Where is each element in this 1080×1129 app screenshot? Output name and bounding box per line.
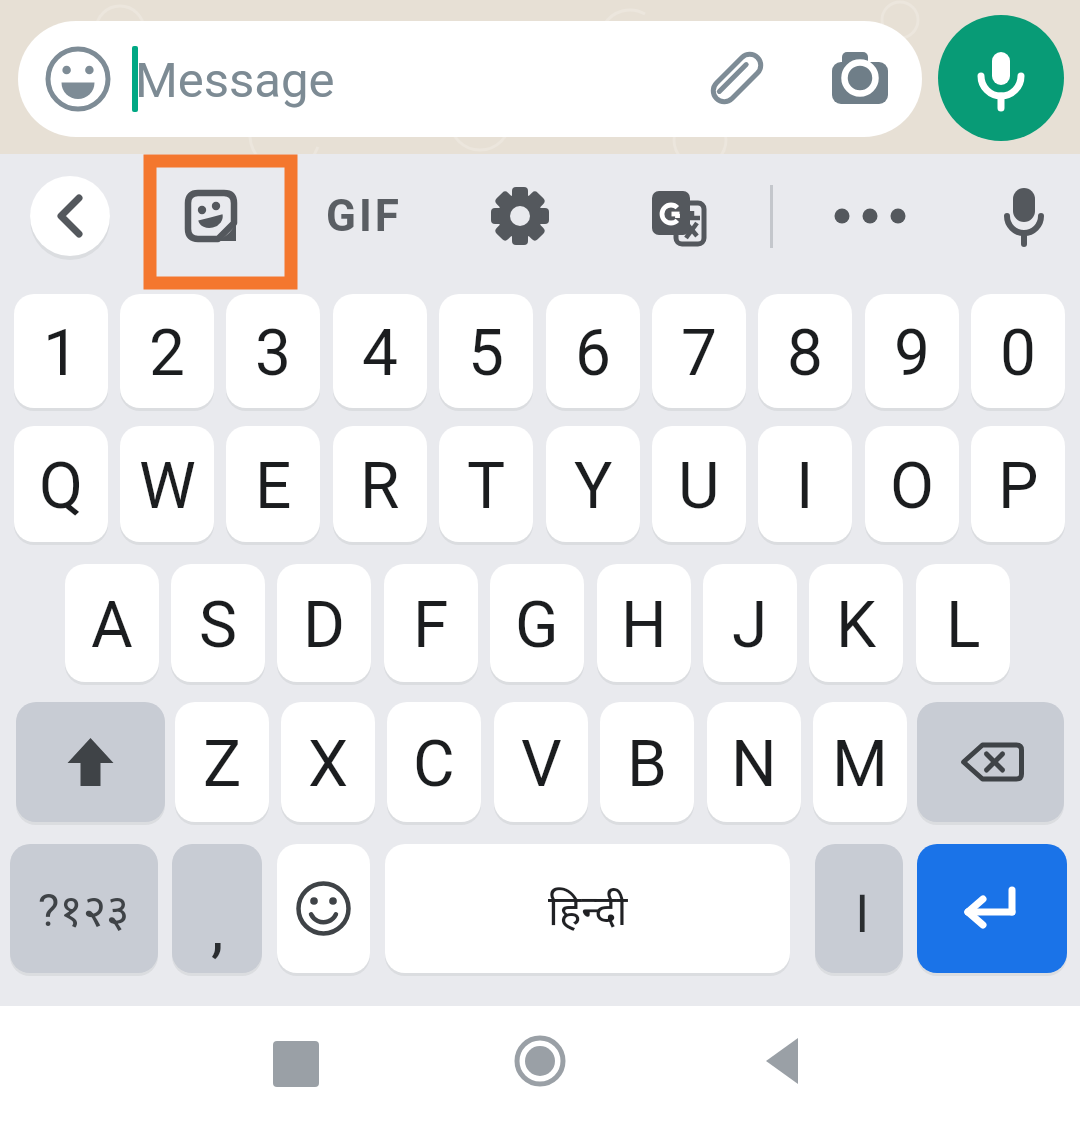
button[interactable]: H [597, 564, 691, 682]
button[interactable] [150, 161, 291, 283]
staticText: H [621, 588, 667, 663]
staticText: Q [39, 449, 84, 524]
staticText: B [627, 727, 667, 802]
button[interactable]: हिन्दी [385, 844, 790, 973]
staticText: 7 [681, 316, 717, 391]
button[interactable]: 6 [546, 294, 640, 408]
button[interactable]: F [384, 564, 478, 682]
button[interactable]: 9 [865, 294, 959, 408]
staticText: 5 [468, 316, 504, 391]
button[interactable]: U [652, 426, 746, 542]
button[interactable]: E [226, 426, 320, 542]
staticText: 0 [1000, 316, 1036, 391]
button[interactable] [917, 702, 1064, 822]
button[interactable] [277, 844, 370, 973]
staticText: हिन्दी [548, 880, 628, 937]
button[interactable]: Message [18, 21, 922, 137]
staticText: F [413, 588, 449, 663]
staticText: Y [574, 449, 613, 524]
button[interactable] [994, 184, 1054, 248]
staticText: K [836, 588, 877, 663]
staticText: M [832, 727, 888, 802]
button[interactable]: , [172, 844, 262, 973]
button[interactable]: S [171, 564, 265, 682]
button[interactable] [30, 176, 110, 256]
staticText: , [211, 891, 224, 966]
button[interactable]: 8 [758, 294, 852, 408]
button[interactable]: D [277, 564, 371, 682]
staticText: 3 [255, 316, 291, 391]
button[interactable]: 3 [226, 294, 320, 408]
button[interactable]: L [916, 564, 1010, 682]
button[interactable] [938, 15, 1064, 141]
staticText: I [796, 449, 814, 524]
button[interactable] [834, 200, 906, 232]
button[interactable]: P [971, 426, 1065, 542]
staticText: G [515, 588, 559, 663]
button[interactable]: W [120, 426, 214, 542]
staticText: N [731, 727, 777, 802]
staticText: L [946, 588, 981, 663]
button[interactable]: Y [546, 426, 640, 542]
staticText: X [308, 727, 349, 802]
button[interactable]: O [865, 426, 959, 542]
button[interactable]: C [387, 702, 481, 822]
staticText: । [848, 868, 871, 950]
staticText: A [91, 588, 133, 663]
staticText: J [732, 588, 768, 663]
staticText: 4 [362, 316, 398, 391]
staticText: E [255, 449, 292, 524]
button[interactable]: I [758, 426, 852, 542]
button[interactable] [917, 844, 1067, 973]
button[interactable]: 0 [971, 294, 1065, 408]
button[interactable] [490, 186, 550, 246]
button[interactable] [16, 702, 165, 822]
button[interactable]: T [439, 426, 533, 542]
staticText: V [521, 727, 562, 802]
button[interactable]: X [281, 702, 375, 822]
button[interactable]: R [333, 426, 427, 542]
button[interactable]: G [490, 564, 584, 682]
staticText: 1 [43, 316, 79, 391]
staticText: P [998, 449, 1039, 524]
staticText: Z [203, 727, 242, 802]
button[interactable]: A [65, 564, 159, 682]
button[interactable]: 2 [120, 294, 214, 408]
button[interactable]: Z [175, 702, 269, 822]
staticText: U [678, 449, 720, 524]
button[interactable] [516, 1037, 564, 1085]
button[interactable]: 1 [14, 294, 108, 408]
button[interactable]: 7 [652, 294, 746, 408]
button[interactable]: K [809, 564, 903, 682]
button[interactable] [273, 1041, 319, 1087]
button[interactable] [650, 190, 706, 246]
button[interactable]: J [703, 564, 797, 682]
button[interactable]: GIF [322, 186, 406, 246]
button[interactable]: M [813, 702, 907, 822]
staticText: GIF [326, 190, 402, 242]
button[interactable]: 4 [333, 294, 427, 408]
button[interactable]: B [600, 702, 694, 822]
staticText: 8 [787, 316, 823, 391]
staticText: T [467, 449, 506, 524]
staticText: O [890, 449, 935, 524]
button[interactable]: 5 [439, 294, 533, 408]
staticText: 6 [575, 316, 611, 391]
staticText: Message [135, 52, 335, 109]
staticText: 9 [894, 316, 930, 391]
button[interactable]: Q [14, 426, 108, 542]
staticText: D [303, 588, 345, 663]
button[interactable]: । [815, 844, 903, 973]
staticText: S [199, 588, 237, 663]
button[interactable]: V [494, 702, 588, 822]
button[interactable]: N [707, 702, 801, 822]
button[interactable] [766, 1038, 798, 1084]
staticText: 2 [149, 316, 185, 391]
staticText: ?१२३ [38, 878, 130, 939]
staticText: C [413, 727, 455, 802]
button[interactable]: ?१२३ [10, 844, 158, 973]
staticText: W [139, 449, 196, 524]
staticText: R [360, 449, 400, 524]
